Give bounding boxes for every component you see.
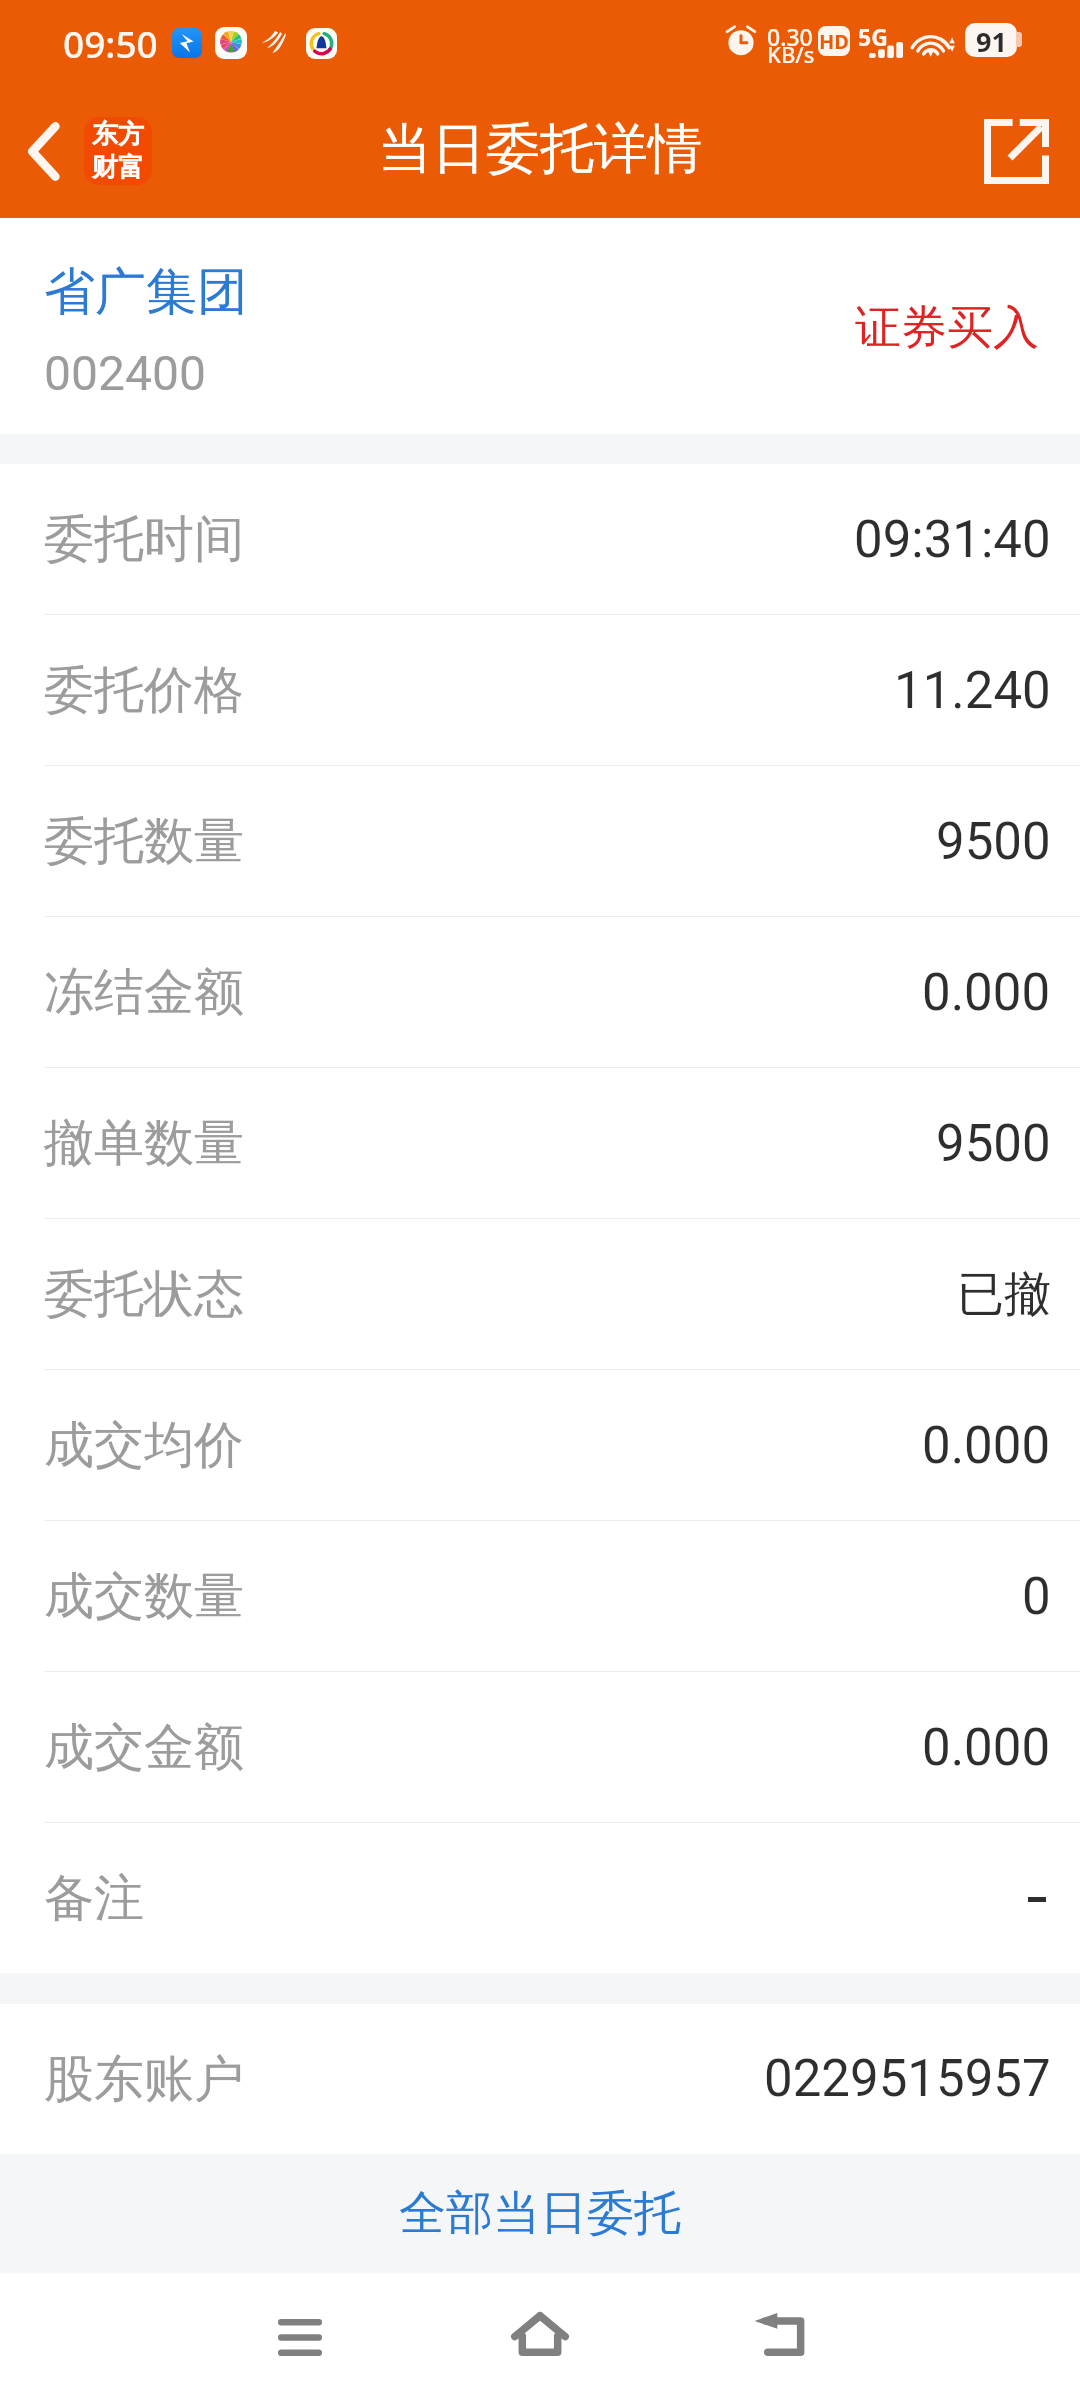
staticText: 0 (1022, 1567, 1051, 1627)
button[interactable]: 成交数量 (0, 1521, 1080, 1672)
staticText: 撤单数量 (44, 1112, 244, 1175)
staticText: 成交金额 (44, 1716, 244, 1779)
staticText: 9500 (936, 812, 1051, 872)
button[interactable]: 冻结金额 (0, 917, 1080, 1068)
staticText: 09:50 (63, 18, 158, 68)
staticText: 已撤 (957, 1265, 1051, 1324)
staticText: 0.000 (922, 1416, 1051, 1476)
button[interactable]: 委托状态 (0, 1219, 1080, 1370)
staticText: 备注 (44, 1867, 144, 1930)
button[interactable]: 委托数量 (0, 766, 1080, 917)
button[interactable]: 成交金额 (0, 1672, 1080, 1823)
staticText: 11.240 (894, 661, 1051, 721)
button[interactable]: 分享 (961, 97, 1071, 205)
staticText: 冻结金额 (44, 961, 244, 1024)
button[interactable]: 返回 (0, 97, 86, 205)
staticText: 002400 (44, 345, 206, 401)
staticText: 9500 (936, 1114, 1051, 1174)
button[interactable]: 委托价格 (0, 615, 1080, 766)
button[interactable]: 主页 (460, 2273, 620, 2383)
staticText: 委托时间 (44, 508, 244, 571)
staticText: KB/s (767, 39, 815, 69)
button[interactable]: 委托时间 (0, 464, 1080, 615)
staticText: 成交数量 (44, 1565, 244, 1628)
button[interactable]: 返回 (700, 2273, 860, 2383)
button[interactable]: 最近任务 (220, 2273, 380, 2383)
staticText: 09:31:40 (854, 510, 1051, 570)
staticText: 成交均价 (44, 1414, 244, 1477)
button[interactable]: 股东账户 (0, 2004, 1080, 2154)
staticText: 财富 (92, 151, 144, 184)
staticText: 证券买入 (855, 299, 1039, 357)
staticText: 0.30 (767, 21, 813, 52)
staticText: 东方 (92, 118, 144, 151)
staticText: 0.000 (922, 1718, 1051, 1778)
staticText: 当日委托详情 (378, 115, 702, 183)
staticText: 委托数量 (44, 810, 244, 873)
button[interactable]: 备注 (0, 1823, 1080, 1973)
staticText: 股东账户 (44, 2048, 244, 2111)
staticText: 91 (976, 23, 1007, 57)
staticText: HD (819, 28, 849, 55)
staticText: 0.000 (922, 963, 1051, 1023)
staticText: 委托价格 (44, 659, 244, 722)
button[interactable]: 撤单数量 (0, 1068, 1080, 1219)
staticText: 5G (858, 21, 888, 52)
staticText: 委托状态 (44, 1263, 244, 1326)
button[interactable]: 成交均价 (0, 1370, 1080, 1521)
staticText: 省广集团 (44, 260, 248, 324)
staticText: 0229515957 (764, 2049, 1051, 2109)
staticText: 全部当日委托 (399, 2184, 681, 2243)
button[interactable]: 全部当日委托 (0, 2154, 1080, 2273)
